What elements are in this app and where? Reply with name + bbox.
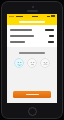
button[interactable] — [10, 27, 54, 33]
button[interactable]: Rate neutral — [27, 58, 37, 68]
button[interactable] — [10, 33, 54, 39]
button[interactable] — [13, 91, 51, 98]
button[interactable]: Home — [28, 107, 37, 116]
button[interactable] — [10, 39, 54, 45]
button[interactable]: Rate sad — [40, 58, 50, 68]
button[interactable]: Rate happy — [14, 58, 24, 68]
